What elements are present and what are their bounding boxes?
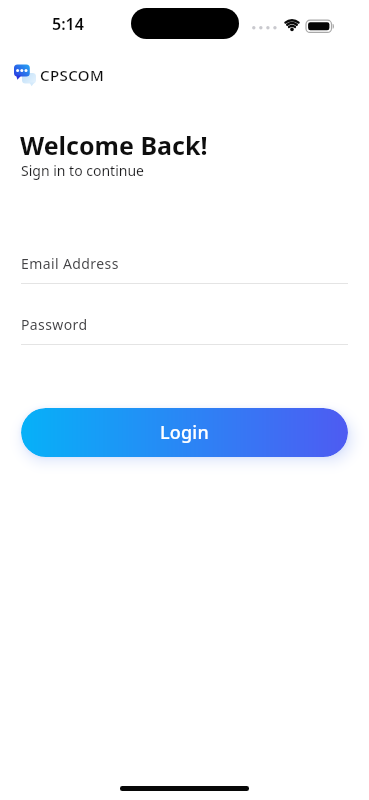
staticText: CPSCOM bbox=[40, 65, 105, 85]
staticText: 5:14 bbox=[52, 13, 84, 35]
staticText: Sign in to continue bbox=[21, 161, 144, 180]
staticText: Login bbox=[160, 420, 209, 445]
staticText: Welcome Back! bbox=[20, 128, 208, 162]
staticText: Email Address bbox=[21, 254, 119, 273]
staticText: Password bbox=[21, 315, 88, 334]
button[interactable]: Login bbox=[21, 408, 348, 457]
button[interactable]: Password bbox=[21, 311, 348, 345]
button[interactable]: Email Address bbox=[21, 250, 348, 284]
